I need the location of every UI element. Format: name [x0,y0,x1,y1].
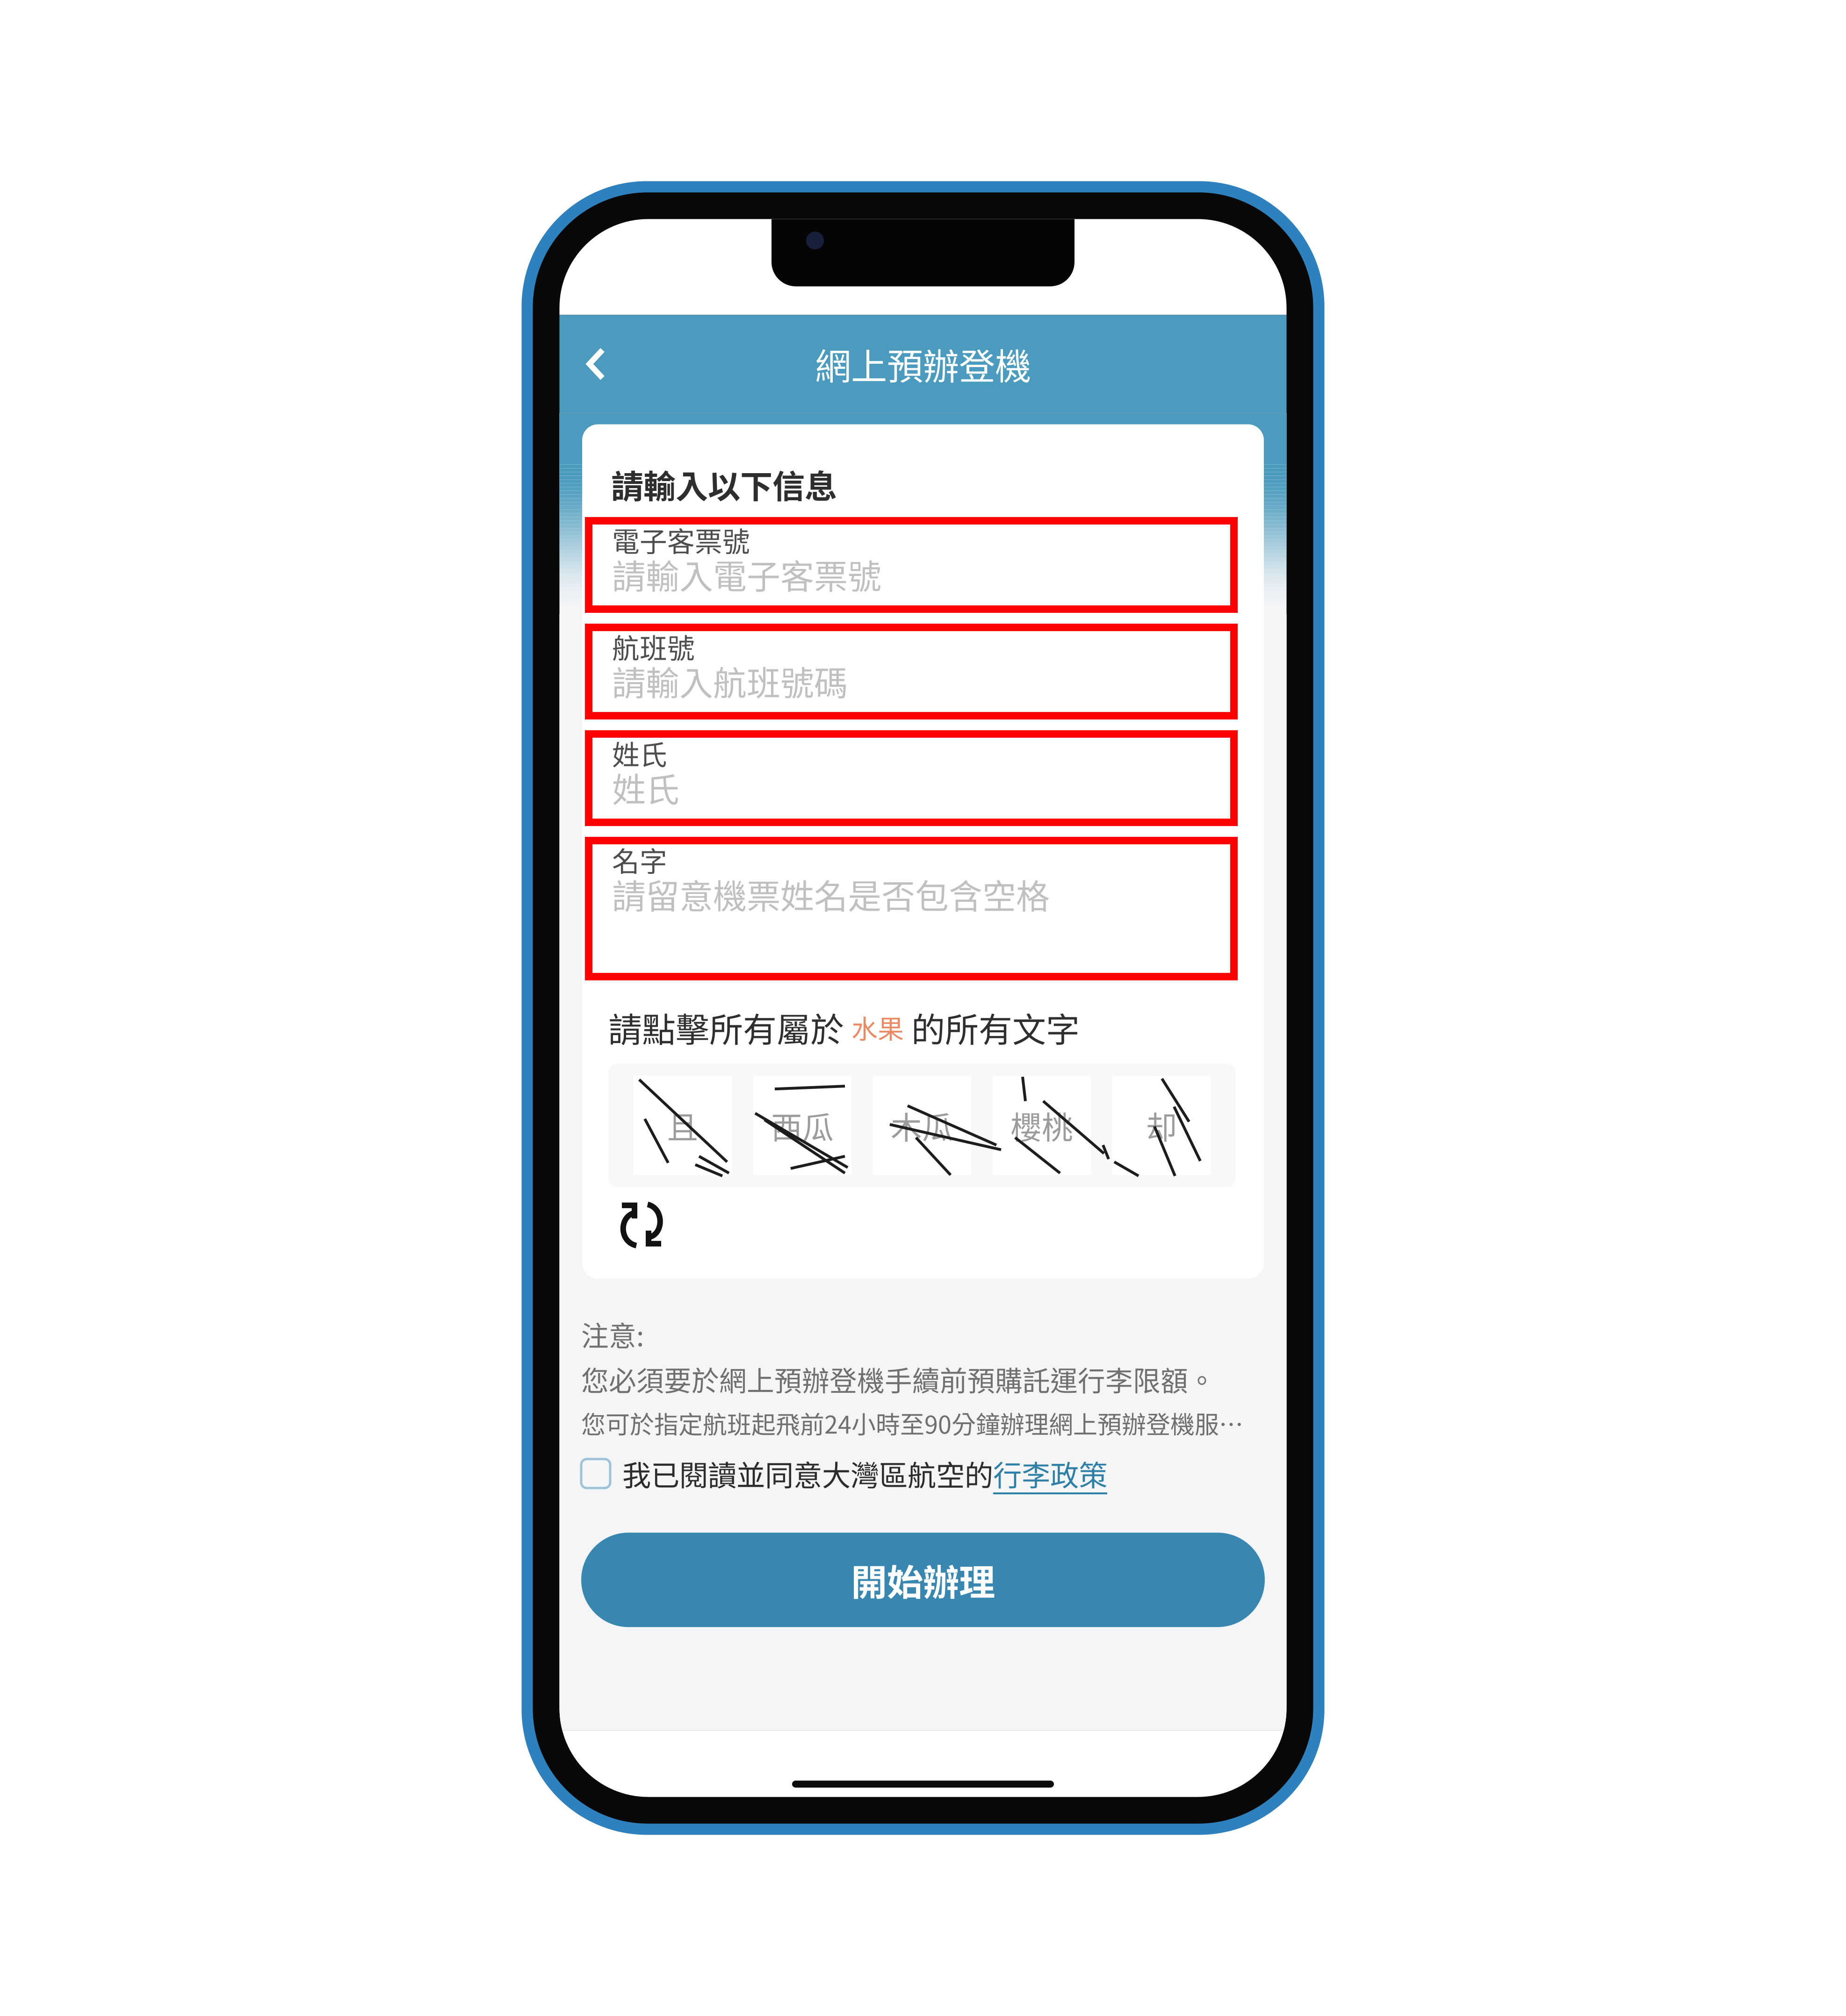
staticText: 我已閱讀並同意大灣區航空的 [622,1453,993,1494]
staticText: 請留意機票姓名是否包含空格 [612,870,1050,918]
staticText: 您必須要於網上預辦登機手續前預購託運行李限額。 [581,1359,1216,1399]
staticText: 水果 [851,1008,904,1046]
button[interactable]: Refresh captcha [608,1187,674,1262]
button[interactable]: 我已閱讀並同意大灣區航空的 [581,1441,1107,1498]
staticText: 開始辦理 [851,1554,995,1606]
staticText: 櫻桃 [1010,1103,1073,1148]
staticText: 請輸入航班號碼 [612,656,848,705]
staticText: 名字 [612,840,667,880]
button[interactable]: 開始辦理 [581,1533,1265,1627]
staticText: 航班號 [612,627,695,666]
staticText: 姓氏 [612,733,667,773]
staticText: 網上預辦登機 [815,338,1031,390]
staticText: 電子客票號 [612,520,750,560]
staticText: 請點擊所有屬於 [608,1003,851,1052]
staticText: 西瓜 [771,1103,834,1148]
staticText: 木瓜 [891,1103,953,1148]
staticText: 您可於指定航班起飛前24小時至90分鐘辦理網上預辦登機服務。 [581,1405,1265,1441]
staticText: 的所有文字 [904,1003,1080,1052]
staticText: 且 [667,1103,698,1148]
staticText: 姓氏 [612,763,679,812]
staticText: 請輸入以下信息 [611,461,837,508]
button[interactable]: Back [559,315,632,413]
staticText: 注意: [581,1314,644,1354]
staticText: 請輸入電子客票號 [612,550,881,598]
staticText: 却 [1146,1103,1177,1148]
staticText: 行李政策 [993,1453,1107,1494]
